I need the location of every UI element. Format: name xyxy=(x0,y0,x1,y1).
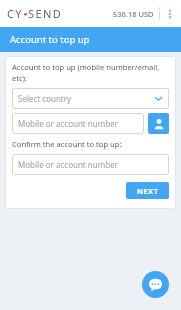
staticText: CY xyxy=(7,6,23,21)
staticText: Mobile or account number xyxy=(18,118,118,129)
staticText: Mobile or account number xyxy=(18,159,118,170)
staticText: Select country xyxy=(18,93,72,104)
button[interactable]: More options xyxy=(163,7,177,21)
staticText: SEND xyxy=(28,6,63,21)
button[interactable]: NEXT xyxy=(126,182,169,199)
staticText: 536.18 USD xyxy=(113,9,154,19)
staticText: Account to top up xyxy=(10,33,90,46)
button[interactable]: Pick contact xyxy=(148,113,169,134)
staticText: Account to top up (mobile number/email, … xyxy=(12,62,169,83)
button[interactable]: Mobile or account number xyxy=(12,154,169,175)
staticText: NEXT xyxy=(137,186,159,196)
button[interactable]: Mobile or account number xyxy=(12,113,144,134)
button[interactable]: Chat support xyxy=(142,271,169,298)
button[interactable]: Select country xyxy=(12,88,169,109)
staticText: Confirm the account to top up: xyxy=(12,139,122,149)
